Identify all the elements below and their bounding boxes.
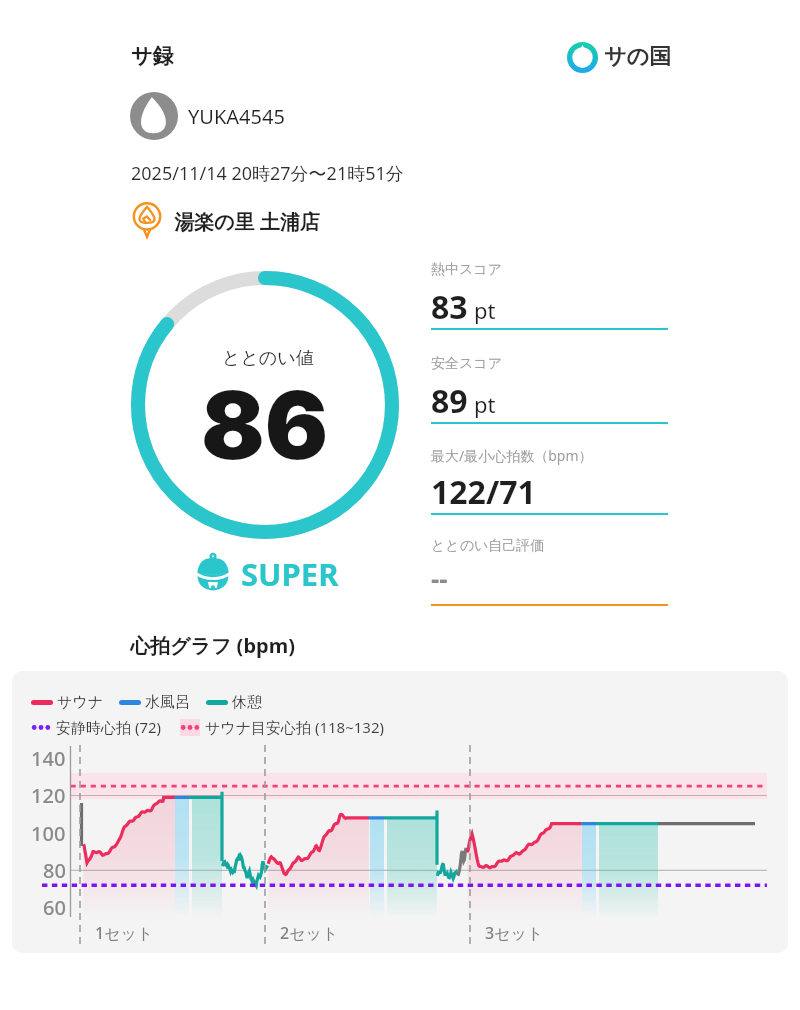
staticText: 熱中スコア <box>431 261 502 279</box>
button[interactable]: 湯楽の里 土浦店 <box>132 202 320 241</box>
button[interactable]: 安全スコア <box>431 355 668 427</box>
staticText: 2セット <box>280 922 339 944</box>
staticText: 水風呂 <box>145 693 190 712</box>
button[interactable]: ととのい値 <box>131 271 399 539</box>
button[interactable]: サウナ <box>12 671 788 953</box>
staticText: 60 <box>43 894 66 920</box>
staticText: 安静時心拍 (72) <box>56 717 162 737</box>
staticText: 休憩 <box>232 693 262 712</box>
staticText: 100 <box>31 820 66 846</box>
staticText: 1セット <box>95 922 154 944</box>
staticText: ととのい値 <box>222 347 314 370</box>
staticText: 122/71 <box>431 470 536 514</box>
staticText: サウナ目安心拍 (118~132) <box>205 717 385 737</box>
staticText: 最大/最小心拍数（bpm） <box>431 446 593 465</box>
staticText: 83 <box>431 285 468 329</box>
button[interactable]: YUKA4545 <box>130 92 285 140</box>
staticText: 3セット <box>485 922 544 944</box>
staticText: 安全スコア <box>431 355 502 373</box>
staticText: YUKA4545 <box>188 103 285 130</box>
staticText: 湯楽の里 土浦店 <box>174 208 320 235</box>
button[interactable]: ととのい自己評価 <box>431 537 668 609</box>
staticText: サの国 <box>604 43 672 71</box>
staticText: pt <box>474 389 496 419</box>
staticText: 140 <box>31 745 66 771</box>
button[interactable]: 熱中スコア <box>431 261 668 333</box>
staticText: 120 <box>31 782 66 808</box>
staticText: 2025/11/14 20時27分〜21時51分 <box>131 161 404 186</box>
button[interactable]: SUPER <box>197 552 339 595</box>
button[interactable]: 最大/最小心拍数（bpm） <box>431 446 668 518</box>
staticText: -- <box>431 561 448 596</box>
staticText: ととのい自己評価 <box>431 537 545 555</box>
staticText: 89 <box>431 379 468 423</box>
staticText: 80 <box>43 857 66 883</box>
button[interactable]: サ録 <box>131 40 187 70</box>
staticText: SUPER <box>241 553 339 595</box>
staticText: サウナ <box>57 693 104 712</box>
staticText: 心拍グラフ (bpm) <box>130 632 295 659</box>
staticText: 86 <box>201 368 329 482</box>
staticText: サ録 <box>131 43 174 69</box>
staticText: pt <box>474 295 496 325</box>
button[interactable]: サの国 <box>567 42 672 73</box>
